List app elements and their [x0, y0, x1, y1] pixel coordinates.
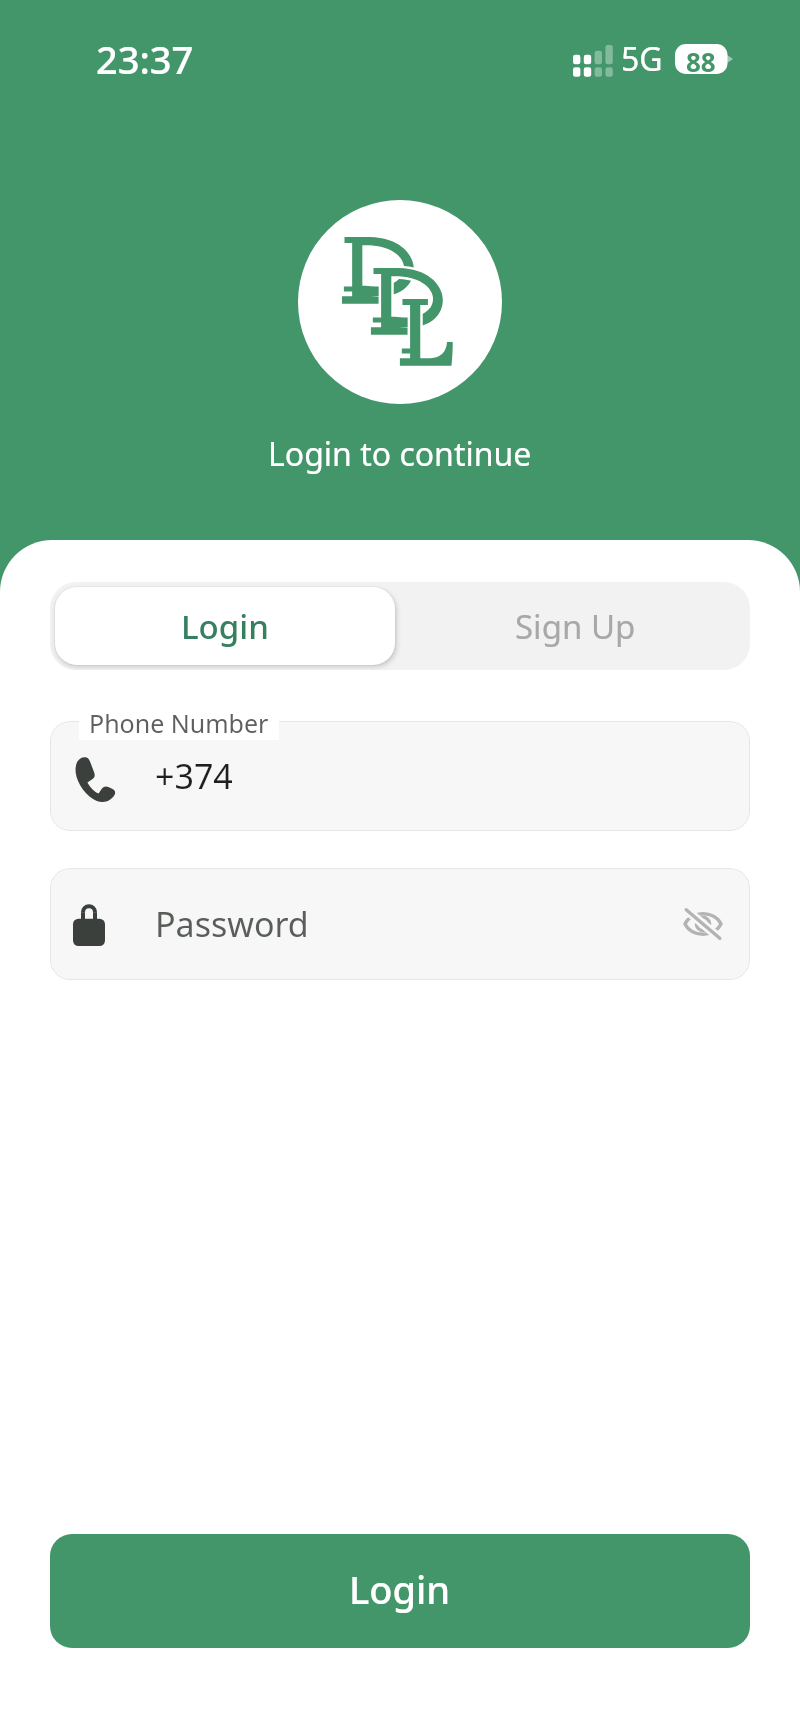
staticText: 23:37 — [96, 33, 194, 85]
button[interactable]: Show password — [677, 898, 729, 950]
staticText: 88 — [686, 44, 716, 74]
staticText: Login — [349, 1563, 451, 1615]
staticText: Sign Up — [515, 604, 636, 649]
staticText: Login to continue — [268, 432, 532, 476]
staticText: 5G — [621, 37, 663, 81]
staticText: Password — [155, 901, 309, 947]
staticText: +374 — [155, 753, 233, 799]
staticText: Login — [181, 604, 269, 649]
button[interactable]: Login — [55, 587, 395, 665]
button[interactable]: Password — [50, 868, 750, 980]
button[interactable]: Login — [50, 1534, 750, 1648]
button[interactable]: +374 — [50, 721, 750, 831]
button[interactable]: Sign Up — [400, 582, 750, 670]
staticText: Phone Number — [89, 706, 269, 740]
